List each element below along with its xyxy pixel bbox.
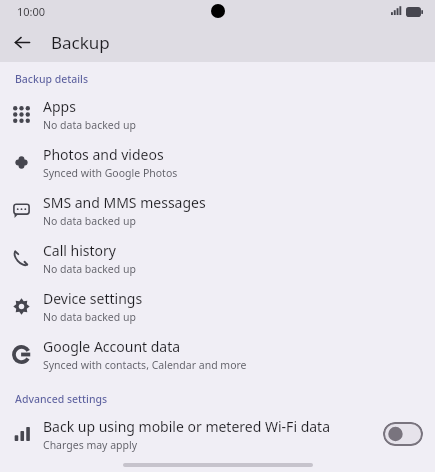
staticText: Google Account data [43, 337, 181, 356]
staticText: No data backed up [43, 118, 136, 132]
staticText: Synced with Google Photos [43, 166, 178, 180]
button[interactable]: Photos and videos [0, 138, 435, 186]
button[interactable]: Back [8, 28, 36, 56]
staticText: SMS and MMS messages [43, 193, 206, 212]
staticText: No data backed up [43, 262, 136, 276]
staticText: No data backed up [43, 310, 136, 324]
button[interactable]: Back up using mobile or metered Wi-Fi da… [0, 410, 435, 458]
staticText: Backup details [15, 72, 89, 86]
button[interactable]: Call history [0, 234, 435, 282]
staticText: Backup [51, 31, 110, 54]
staticText: Photos and videos [43, 145, 164, 164]
button[interactable]: Apps [0, 90, 435, 138]
staticText: Apps [43, 97, 76, 116]
button[interactable]: Back up using mobile data toggle [383, 422, 423, 446]
staticText: Call history [43, 241, 116, 260]
staticText: Synced with contacts, Calendar and more [43, 358, 247, 372]
button[interactable]: SMS and MMS messages [0, 186, 435, 234]
staticText: 10:00 [17, 4, 46, 19]
staticText: Back up using mobile or metered Wi-Fi da… [43, 417, 330, 436]
staticText: No data backed up [43, 214, 136, 228]
staticText: Device settings [43, 289, 143, 308]
button[interactable]: Device settings [0, 282, 435, 330]
staticText: Advanced settings [15, 392, 108, 406]
staticText: Charges may apply [43, 438, 138, 452]
button[interactable]: Google Account data [0, 330, 435, 378]
